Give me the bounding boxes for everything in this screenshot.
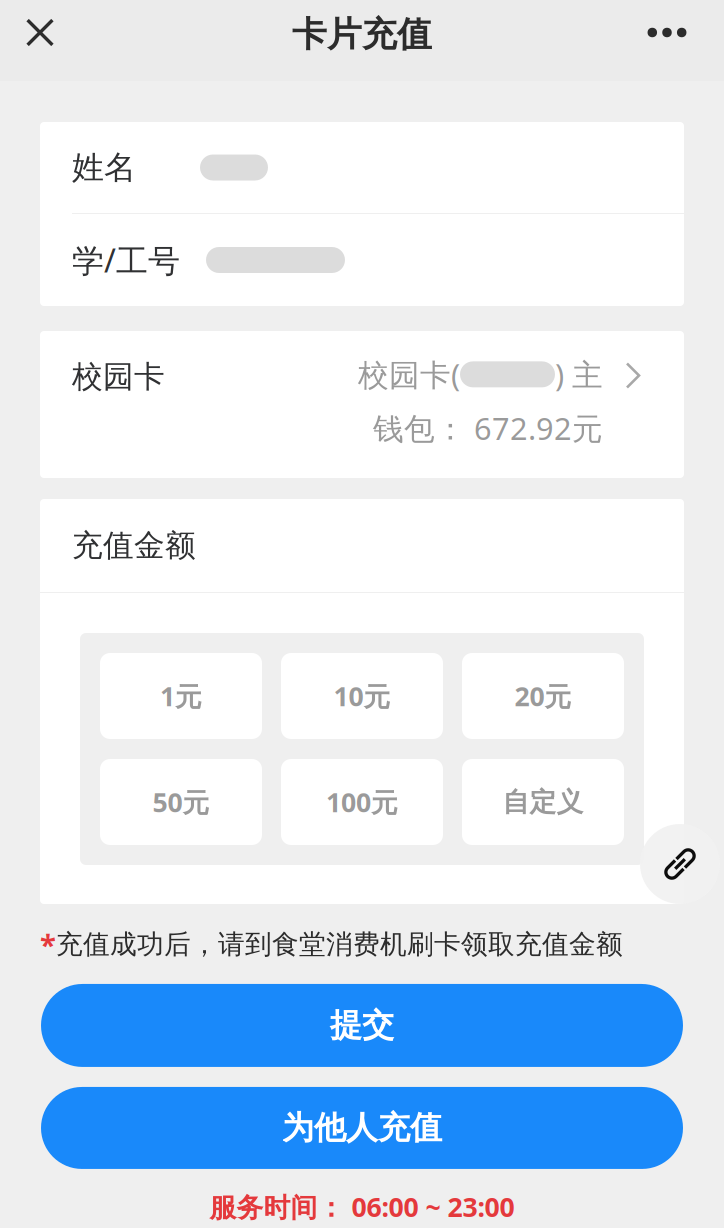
staticText: 20元 [514, 678, 571, 714]
button[interactable]: 50元 [100, 759, 262, 845]
button[interactable]: 关闭 [13, 3, 67, 61]
button[interactable]: 100元 [281, 759, 443, 845]
staticText: 校园卡( [358, 354, 460, 395]
button[interactable]: 1元 [100, 653, 262, 739]
staticText: 服务时间： 06:00 ~ 23:00 [209, 1189, 514, 1224]
button[interactable]: 自定义 [462, 759, 624, 845]
button[interactable]: 为他人充值 [41, 1087, 683, 1169]
staticText: 10元 [333, 678, 390, 714]
button[interactable]: 更多 [640, 3, 694, 61]
staticText: 为他人充值 [282, 1108, 442, 1148]
staticText: 充值成功后，请到食堂消费机刷卡领取充值金额 [56, 928, 623, 961]
staticText: * [40, 925, 56, 964]
staticText: 卡片充值 [292, 13, 432, 56]
button[interactable]: 链接 [640, 824, 720, 904]
staticText: 自定义 [502, 786, 583, 818]
staticText: 校园卡 [72, 358, 165, 396]
staticText: 1元 [160, 678, 202, 714]
staticText: 姓名 [72, 148, 136, 187]
staticText: 100元 [326, 784, 398, 820]
button[interactable]: 20元 [462, 653, 624, 739]
staticText: 钱包： 672.92元 [373, 408, 603, 448]
staticText: 50元 [152, 784, 209, 820]
button[interactable]: 校园卡 [40, 331, 684, 478]
staticText: 充值金额 [72, 527, 196, 564]
staticText: 学/工号 [72, 239, 180, 281]
staticText: 提交 [330, 1006, 394, 1045]
button[interactable]: 10元 [281, 653, 443, 739]
staticText: ) 主 [555, 354, 603, 395]
button[interactable]: 提交 [41, 984, 683, 1067]
